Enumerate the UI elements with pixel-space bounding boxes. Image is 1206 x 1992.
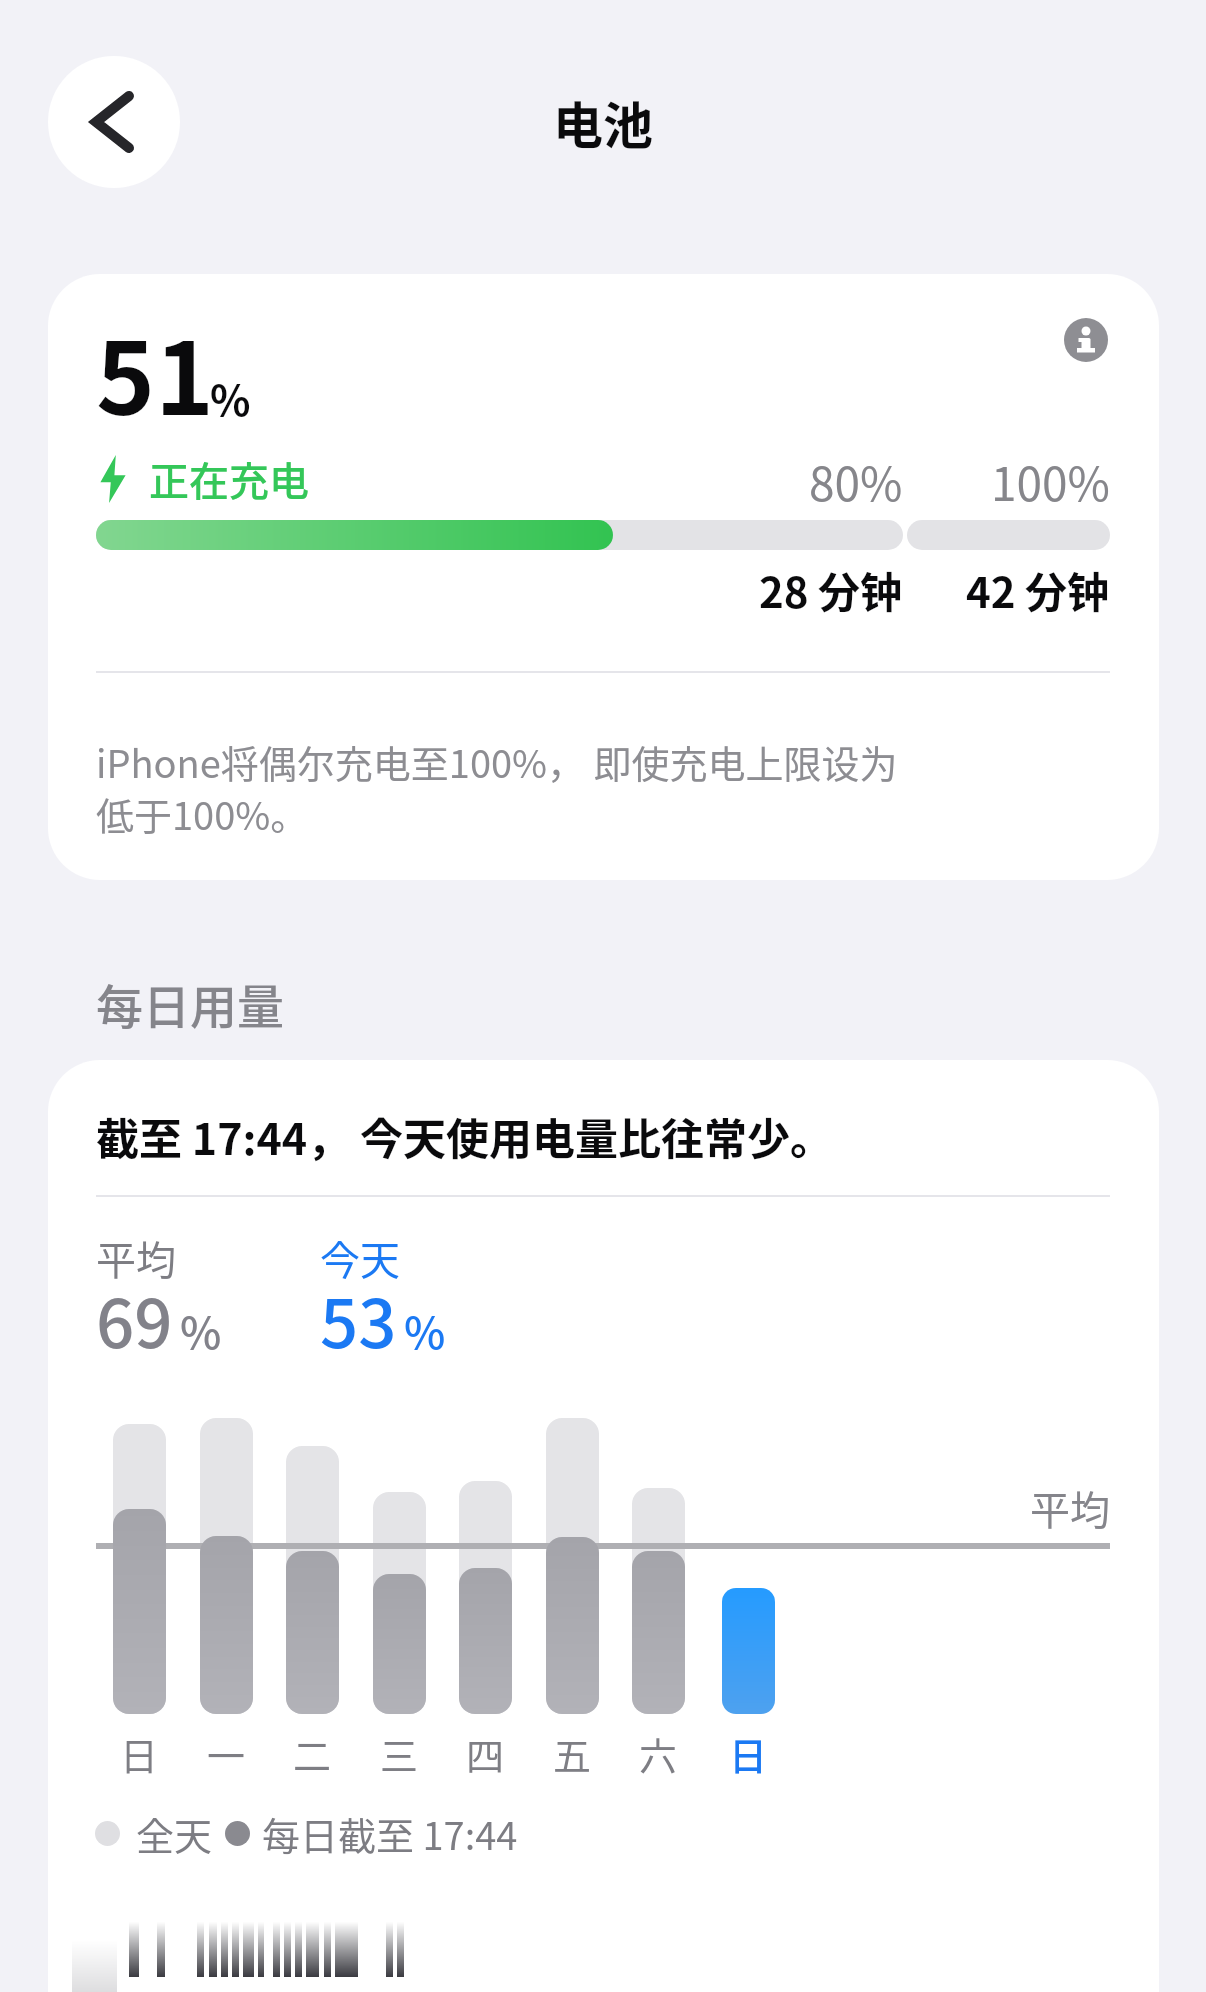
staticText: 五 [553, 1726, 592, 1776]
staticText: 每日用量 [96, 969, 284, 1037]
staticText: % [180, 1298, 222, 1362]
staticText: 四 [466, 1726, 505, 1776]
staticText: % [210, 367, 251, 428]
staticText: 80% [809, 448, 903, 515]
staticText: 平均 [1030, 1479, 1110, 1537]
staticText: 三 [380, 1726, 419, 1776]
staticText: 平均 [96, 1229, 176, 1287]
staticText: 日 [729, 1726, 768, 1776]
staticText: % [404, 1298, 446, 1362]
button[interactable] [48, 56, 180, 188]
staticText: 截至 17:44， 今天使用电量比往常少。 [96, 1105, 833, 1167]
staticText: 51 [96, 299, 214, 444]
staticText: 电池 [553, 86, 653, 158]
staticText: 正在充电 [149, 450, 309, 508]
staticText: 42 分钟 [966, 559, 1110, 620]
staticText: 一 [207, 1726, 246, 1776]
staticText: 100% [991, 448, 1110, 515]
staticText: 六 [639, 1726, 678, 1776]
staticText: 今天 [320, 1229, 400, 1287]
staticText: 每日截至 17:44 [262, 1806, 518, 1861]
staticText: 69 [96, 1270, 173, 1367]
staticText: iPhone将偶尔充电至100%， 即使充电上限设为 低于100%。 [96, 734, 898, 841]
button[interactable] [1064, 318, 1108, 362]
staticText: 二 [293, 1726, 332, 1776]
staticText: 28 分钟 [759, 559, 903, 620]
staticText: 53 [320, 1270, 397, 1367]
staticText: 全天 [136, 1806, 213, 1861]
staticText: 日 [120, 1726, 159, 1776]
